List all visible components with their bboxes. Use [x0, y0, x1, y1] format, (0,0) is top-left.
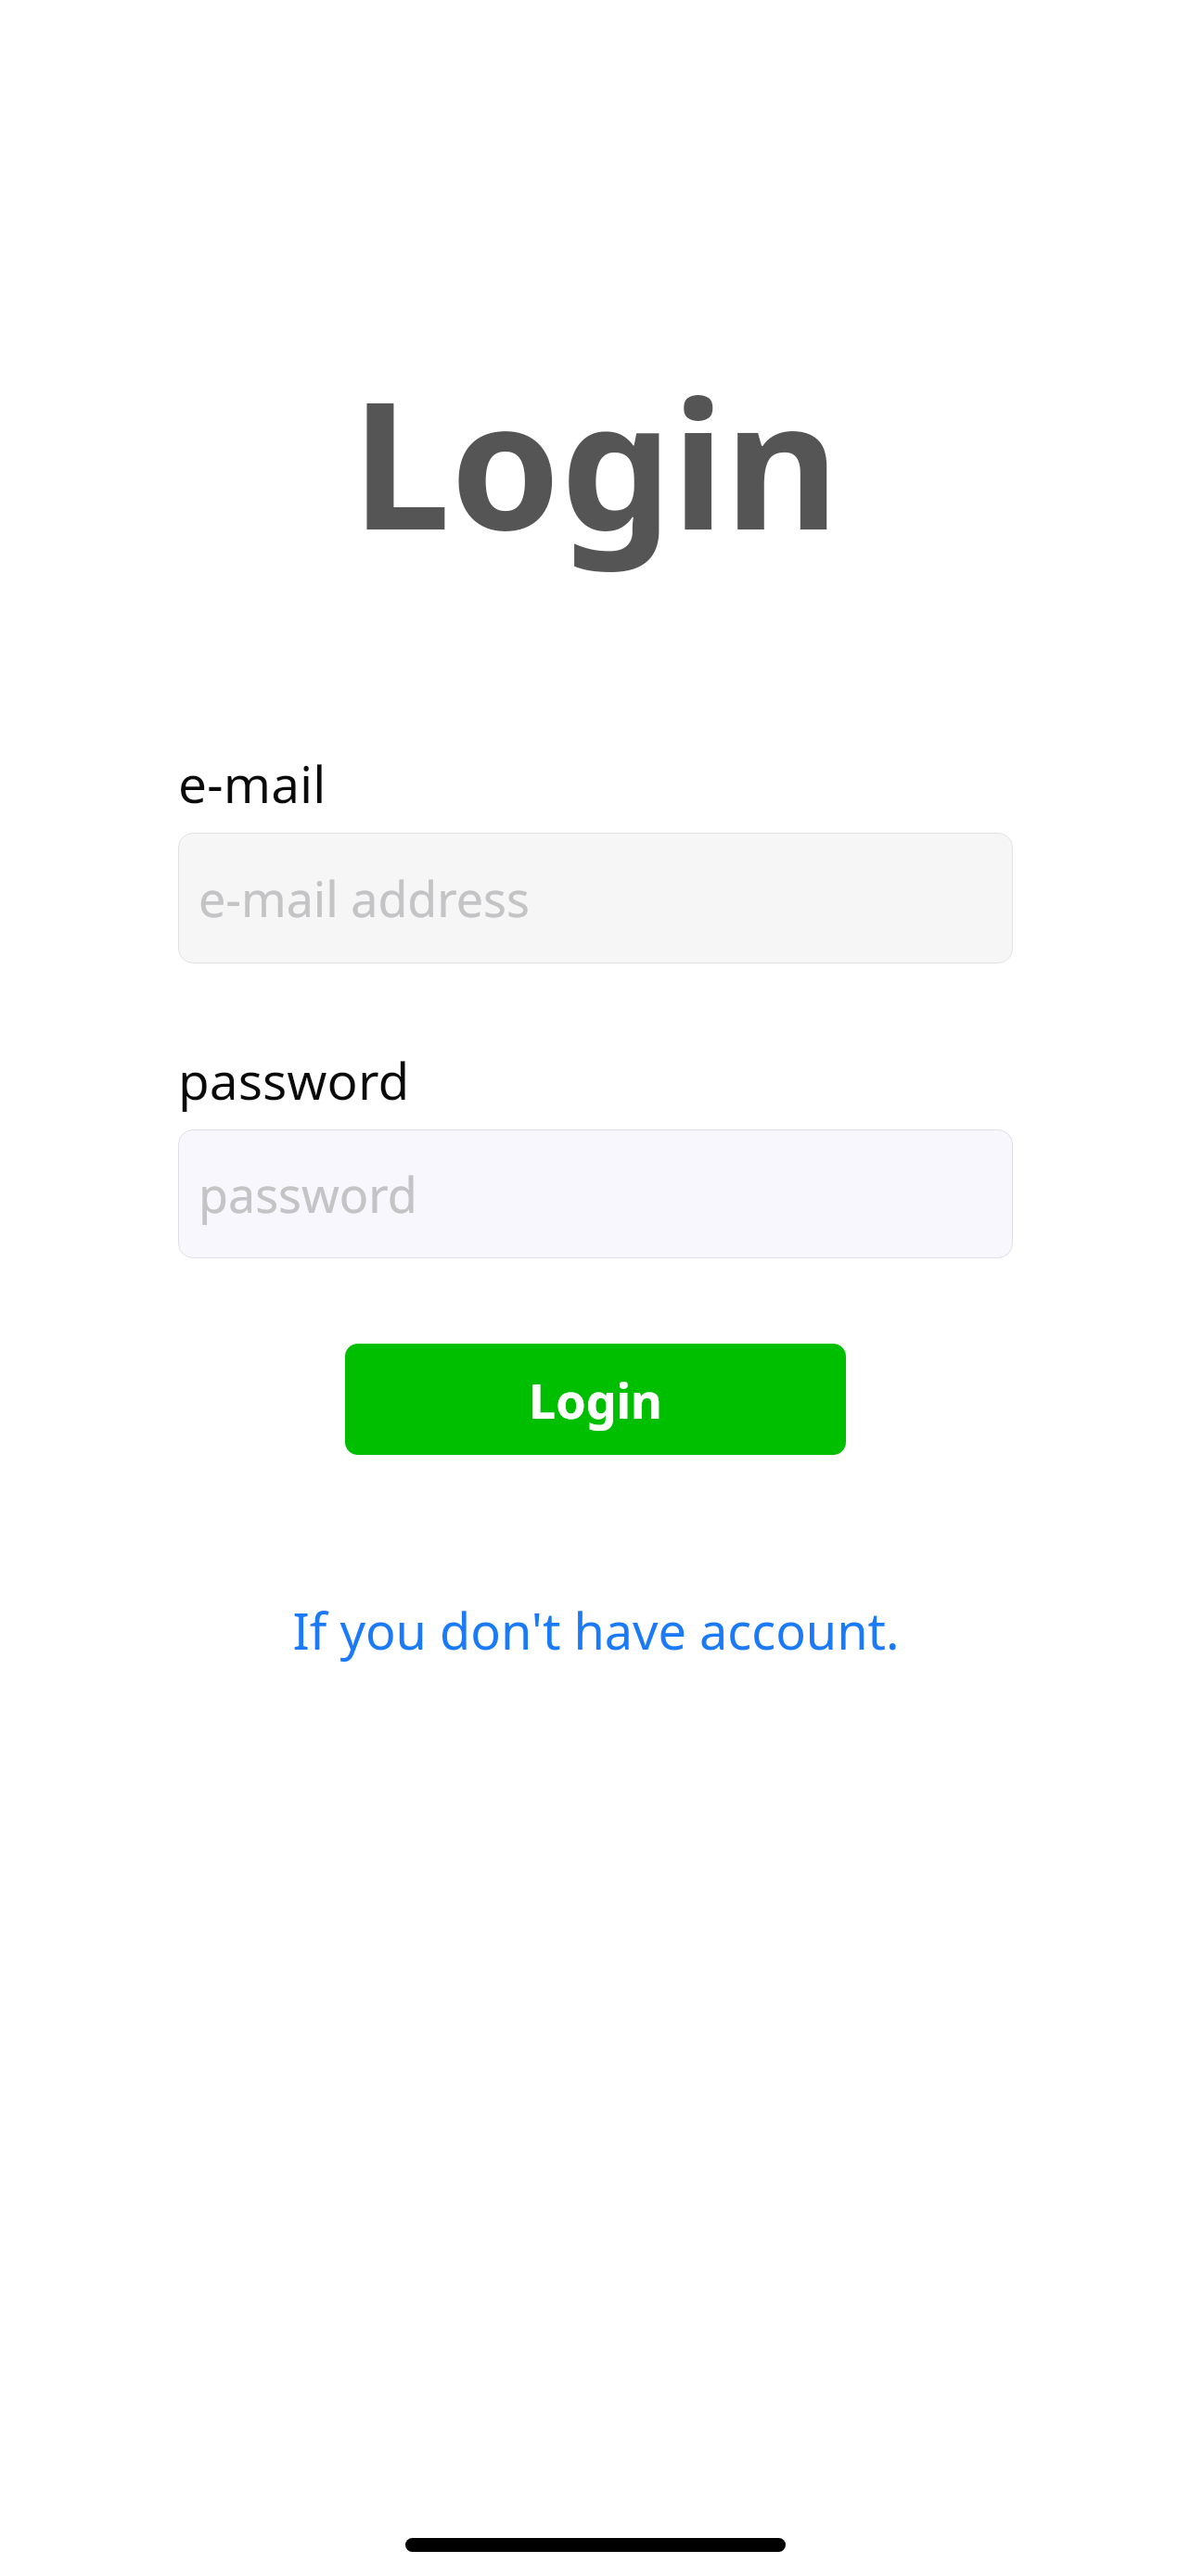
staticText: password [178, 1045, 410, 1115]
staticText: If you don't have account. [292, 1596, 900, 1664]
staticText: e-mail [178, 748, 327, 818]
button[interactable]: If you don't have account. [281, 1588, 911, 1672]
staticText: e-mail address [198, 865, 530, 931]
staticText: Login [352, 341, 839, 581]
other: Home indicator [405, 2538, 786, 2552]
staticText: Login [529, 1367, 662, 1433]
button[interactable]: e-mail address [178, 833, 1013, 963]
button[interactable]: Login [345, 1344, 846, 1455]
button[interactable]: password [178, 1129, 1013, 1258]
staticText: password [198, 1161, 417, 1227]
